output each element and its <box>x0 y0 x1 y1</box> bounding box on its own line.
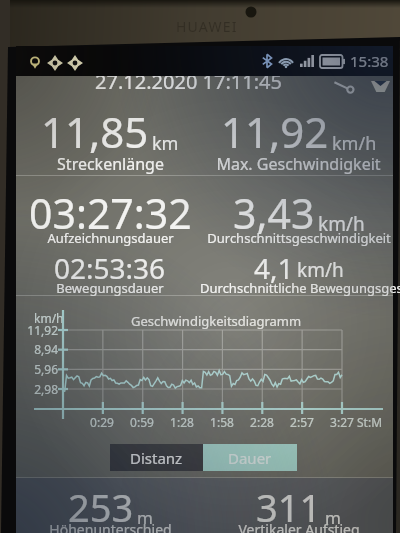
staticText: km/h <box>34 310 64 326</box>
staticText: 2,98 <box>14 381 58 397</box>
staticText: 2:28 <box>245 414 279 430</box>
button[interactable]: 27.12.2020 17:11:45 <box>0 68 377 95</box>
staticText: 0:59 <box>125 414 159 430</box>
staticText: Durchschnittliche Bewegungsgeschwin… <box>200 279 400 297</box>
staticText: Höhenunterschied <box>49 520 172 533</box>
staticText: 11,85 <box>41 103 149 160</box>
button[interactable]: 311 <box>204 481 393 533</box>
other: Tracking <box>67 55 83 71</box>
staticText: 0:29 <box>85 414 119 430</box>
button[interactable]: 11,85 <box>16 103 204 160</box>
button[interactable]: Bewegungsdauer <box>16 279 204 297</box>
button[interactable]: Max. Geschwindigkeit <box>204 153 393 175</box>
staticText: 27.12.2020 17:11:45 <box>95 68 282 95</box>
staticText: Vertikaler Aufstieg <box>238 520 360 533</box>
button[interactable]: Durchschnittliche Bewegungsgeschwin… <box>200 279 400 297</box>
button[interactable]: 03:27:32 <box>16 185 204 241</box>
button[interactable]: Vertikaler Aufstieg <box>204 520 393 533</box>
staticText: Max. Geschwindigkeit <box>216 153 381 175</box>
staticText: Bewegungsdauer <box>56 279 164 297</box>
staticText: km/h <box>318 211 365 237</box>
button[interactable]: Durchschnittsgeschwindigkeit <box>204 229 393 247</box>
staticText: km/h <box>297 257 344 283</box>
staticText: HUAWEI <box>176 17 238 36</box>
staticText: Streckenlänge <box>57 153 164 175</box>
staticText: Distanz <box>130 448 183 468</box>
staticText: Aufzeichnungsdauer <box>47 229 174 247</box>
staticText: 1:28 <box>165 414 199 430</box>
staticText: Geschwindigkeitsdiagramm <box>131 312 302 330</box>
staticText: 2:57 <box>285 414 319 430</box>
button[interactable]: 02:53:36 <box>16 249 204 287</box>
other: Key notification <box>334 80 355 92</box>
staticText: 1:58 <box>205 414 239 430</box>
staticText: 253 <box>68 481 134 533</box>
staticText: 15:38 <box>350 51 389 71</box>
other: Tracking <box>47 55 63 71</box>
staticText: 03:27:32 <box>29 185 192 241</box>
button[interactable]: 11,92 <box>204 103 393 160</box>
staticText: 11,92 <box>14 322 58 338</box>
staticText: Durchschnittsgeschwindigkeit <box>207 229 391 247</box>
staticText: m <box>325 506 341 529</box>
staticText: 311 <box>256 481 322 533</box>
staticText: St:M <box>357 414 383 430</box>
staticText: 02:53:36 <box>54 249 166 287</box>
staticText: Dauer <box>228 448 272 468</box>
staticText: 11,92 <box>221 103 329 160</box>
staticText: km/h <box>332 131 377 156</box>
staticText: 3:27 <box>325 414 359 430</box>
button[interactable]: Dauer <box>203 444 297 471</box>
staticText: km <box>152 131 179 156</box>
button[interactable]: Aufzeichnungsdauer <box>16 229 204 247</box>
staticText: m <box>137 506 153 529</box>
staticText: 4,1 <box>254 249 294 287</box>
button[interactable]: Streckenlänge <box>16 153 204 175</box>
other: Mail notification <box>371 81 390 92</box>
button[interactable]: Höhenunterschied <box>16 520 204 533</box>
button[interactable]: 3,43 <box>204 185 393 241</box>
button[interactable]: Distanz <box>110 444 203 471</box>
other: Location <box>29 57 41 69</box>
staticText: 3,43 <box>233 185 315 241</box>
button[interactable]: 4,1 <box>204 249 393 287</box>
staticText: 8,94 <box>14 341 58 357</box>
button[interactable]: 253 <box>16 481 204 533</box>
staticText: 5,96 <box>14 361 58 377</box>
